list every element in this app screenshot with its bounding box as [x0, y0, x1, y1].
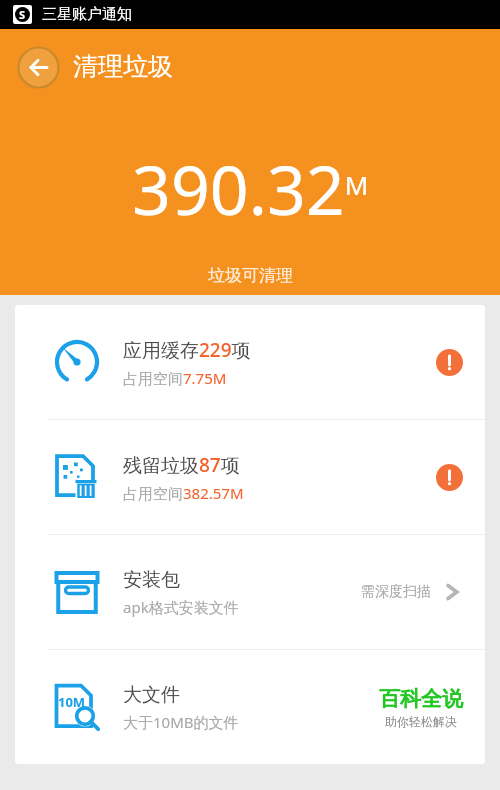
- staticText: S: [19, 7, 26, 22]
- button[interactable]: 10M: [15, 650, 485, 764]
- staticText: 残留垃圾87项: [123, 452, 240, 478]
- staticText: apk格式安装文件: [123, 597, 239, 617]
- staticText: 应用缓存229项: [123, 337, 251, 363]
- staticText: 三星账户通知: [42, 5, 132, 24]
- staticText: 需深度扫描: [361, 583, 431, 601]
- staticText: 占用空间382.57M: [123, 483, 244, 503]
- staticText: 390.32M: [132, 142, 369, 235]
- staticText: 助你轻松解决: [385, 714, 457, 729]
- staticText: 大文件: [123, 683, 180, 707]
- button[interactable]: 返回: [17, 46, 60, 89]
- staticText: 10M: [58, 693, 86, 711]
- staticText: 安装包: [123, 568, 180, 592]
- button[interactable]: 应用缓存229项: [15, 305, 485, 419]
- staticText: 百科全说: [379, 686, 463, 712]
- staticText: 清理垃圾: [73, 51, 173, 82]
- staticText: 垃圾可清理: [208, 265, 293, 286]
- button[interactable]: 安装包: [15, 535, 485, 649]
- staticText: 占用空间7.75M: [123, 368, 227, 388]
- button[interactable]: 残留垃圾87项: [15, 420, 485, 534]
- staticText: 大于10MB的文件: [123, 712, 239, 732]
